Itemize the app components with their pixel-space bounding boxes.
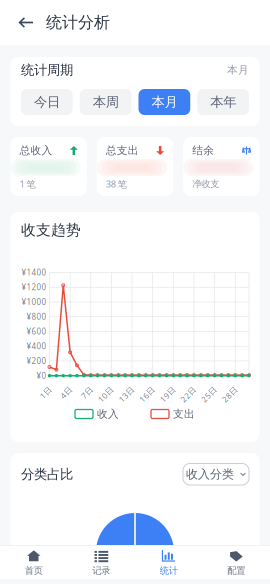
staticText: 总收入 [19,144,52,157]
staticText: 收入分类 [186,467,234,482]
button[interactable]: 本周 [80,89,132,115]
staticText: 1 笔 [19,178,35,190]
button[interactable]: 今日 [21,89,73,115]
staticText: 收入 [97,407,119,420]
button[interactable]: 返回 [18,1,46,43]
staticText: 13日 [119,392,137,402]
button[interactable]: 首页 [0,546,67,580]
staticText: 统计分析 [46,13,110,32]
staticText: 22日 [180,392,198,402]
staticText: 总支出 [106,144,139,157]
staticText: 19日 [160,392,178,402]
staticText: ¥400 [26,341,46,351]
button[interactable]: 本月 [138,89,190,115]
staticText: 4日 [62,392,75,402]
staticText: 本月 [151,94,177,110]
staticText: 统计 [160,565,178,576]
staticText: ¥1000 [21,297,46,307]
staticText: 16日 [139,392,157,402]
staticText: 今日 [34,94,60,110]
staticText: 25日 [201,392,219,402]
staticText: 本年 [210,94,236,110]
staticText: 配置 [227,565,245,576]
button[interactable]: 记录 [67,546,135,580]
staticText: ¥200 [26,356,46,366]
staticText: 7日 [82,392,95,402]
staticText: 38 笔 [106,178,127,190]
button[interactable]: 收入分类 [183,463,249,485]
staticText: ¥1200 [21,282,46,292]
staticText: ¥0 [36,370,46,381]
staticText: ¥1400 [21,267,46,278]
staticText: 收支趋势 [21,221,81,239]
staticText: 本周 [93,94,119,110]
staticText: ¥600 [26,326,46,337]
staticText: 记录 [92,565,110,576]
staticText: 1日 [41,392,54,402]
staticText: 28日 [222,392,240,402]
staticText: 10日 [98,392,116,402]
staticText: 净收支 [192,178,219,190]
button[interactable]: 配置 [202,546,270,580]
staticText: ¥800 [26,311,46,322]
button[interactable]: 本年 [197,89,249,115]
button[interactable]: 统计 [135,546,202,580]
staticText: 分类占比 [21,466,73,482]
staticText: 结余 [192,144,214,157]
staticText: 本月 [227,63,249,76]
staticText: 统计周期 [21,62,73,78]
staticText: 支出 [173,407,195,420]
staticText: 首页 [25,565,43,576]
